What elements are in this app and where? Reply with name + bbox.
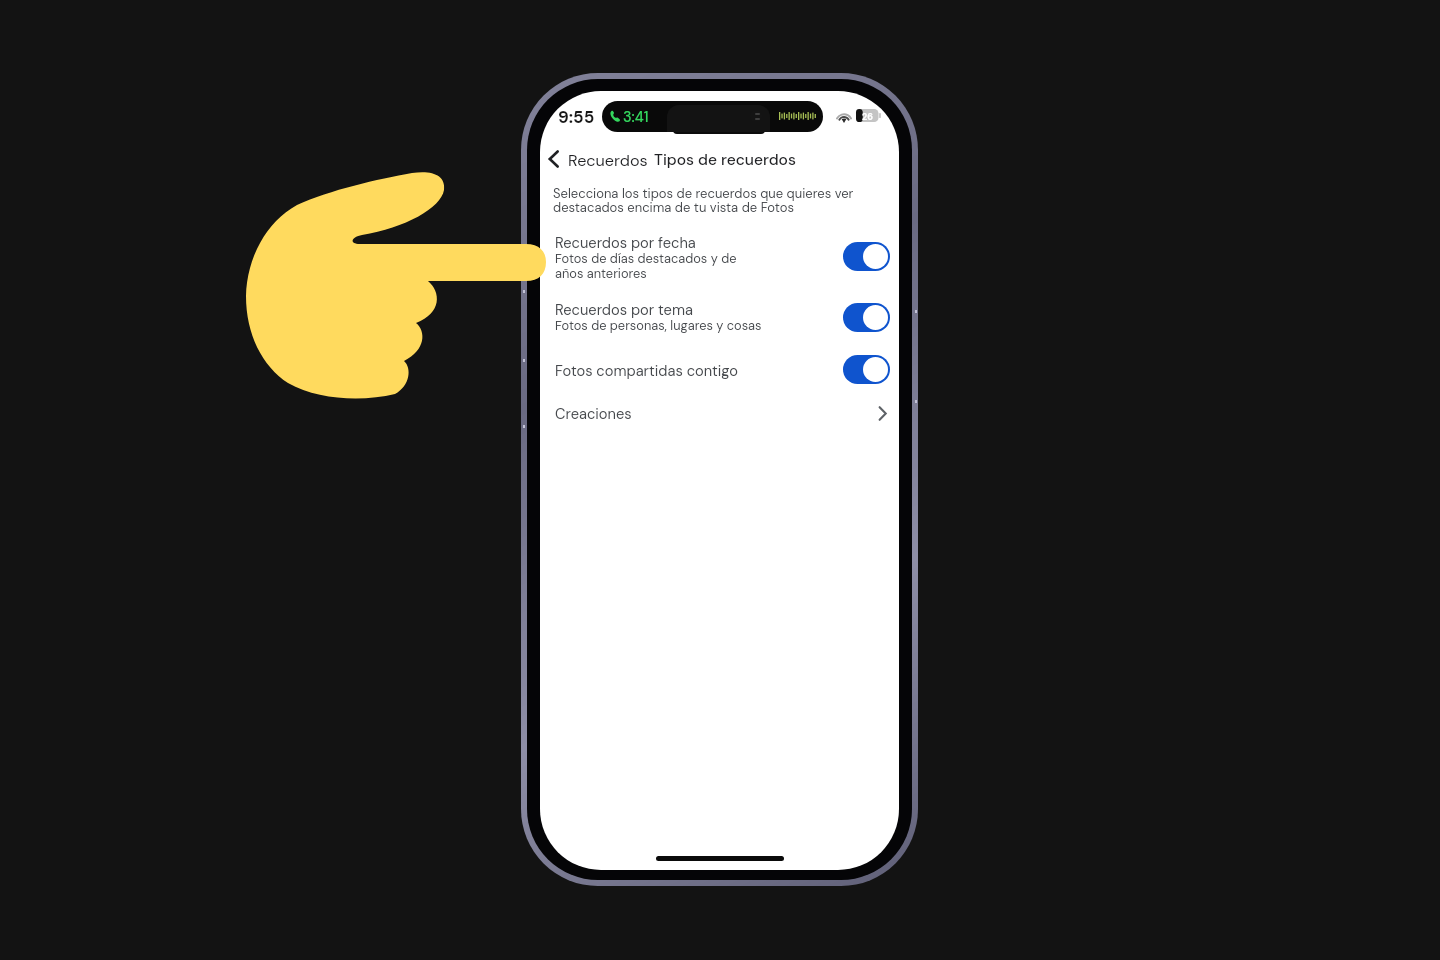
staticText: Recuerdos por tema [555,300,693,319]
button[interactable]: Back to Recuerdos [545,147,651,173]
button[interactable]: Fotos compartidas contigo [548,354,896,386]
other: Wi-Fi [836,110,852,122]
staticText: Fotos de días destacados y de años anter… [555,250,737,282]
button[interactable]: Ongoing call 3:41 [602,101,823,132]
staticText: 9:55 [558,106,595,128]
staticText: 3:41 [623,108,649,127]
other: Battery 26 percent [856,109,881,122]
button[interactable]: Recuerdos por tema [548,293,896,335]
staticText: Recuerdos por fecha [555,233,696,252]
button[interactable]: Recuerdos por tema, on [843,303,890,332]
other: Pointing hand [249,172,549,404]
staticText: Recuerdos [568,150,648,171]
button[interactable]: Creaciones [548,395,896,429]
staticText: Fotos compartidas contigo [555,361,738,380]
staticText: Fotos de personas, lugares y cosas [555,317,762,334]
staticText: Creaciones [555,404,632,423]
button[interactable]: Fotos compartidas contigo, on [843,355,890,384]
button[interactable]: Recuerdos por fecha [548,226,896,284]
staticText: Tipos de recuerdos [654,150,796,170]
staticText: Selecciona los tipos de recuerdos que qu… [553,185,854,216]
staticText: 26 [862,111,873,123]
button[interactable]: Recuerdos por fecha, on [843,242,890,271]
